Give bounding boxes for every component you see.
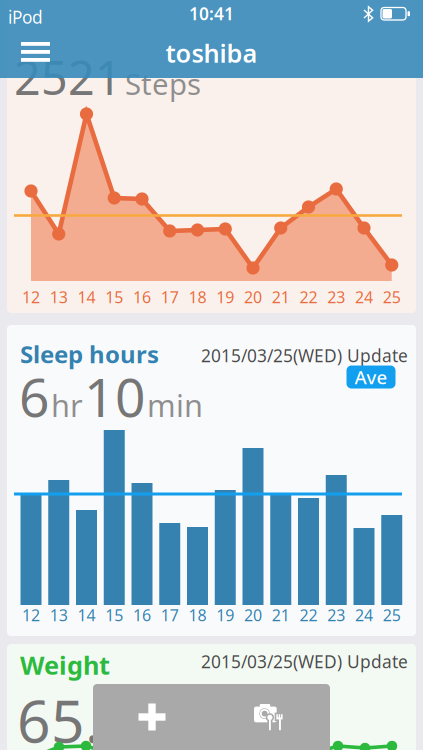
staticText: 10 [84, 361, 146, 432]
staticText: toshiba [165, 36, 257, 70]
staticText: 19 [216, 286, 234, 308]
staticText: 25 [383, 604, 401, 626]
staticText: 2015/03/25(WED) Update [201, 344, 408, 367]
staticText: Sleep hours [20, 338, 159, 370]
staticText: 10:41 [189, 2, 234, 25]
staticText: 20 [244, 286, 262, 308]
staticText: 12 [22, 286, 40, 308]
staticText: min [147, 385, 203, 425]
staticText: 25 [383, 286, 401, 308]
staticText: 22 [299, 286, 317, 308]
staticText: 17 [161, 286, 179, 308]
staticText: 6 [19, 361, 50, 432]
button[interactable]: Add meal photo [211, 684, 329, 750]
staticText: 13 [50, 604, 68, 626]
button[interactable]: Ave [346, 365, 395, 389]
staticText: 14 [77, 286, 95, 308]
staticText: 24 [355, 604, 373, 626]
staticText: 20 [244, 604, 262, 626]
staticText: 2015/03/25(WED) Update [201, 650, 408, 673]
staticText: 18 [188, 286, 206, 308]
staticText: Steps [125, 64, 201, 103]
staticText: 19 [216, 604, 234, 626]
staticText: 13 [50, 286, 68, 308]
button[interactable]: Menu [0, 0, 60, 70]
staticText: 15 [105, 286, 123, 308]
staticText: 2521 [14, 46, 122, 108]
staticText: 16 [133, 604, 151, 626]
staticText: 12 [22, 604, 40, 626]
staticText: 16 [133, 286, 151, 308]
staticText: Ave [354, 365, 387, 389]
button[interactable]: Add entry [93, 684, 211, 750]
staticText: 65.0 [17, 681, 135, 750]
staticText: 23 [327, 604, 345, 626]
staticText: 14 [77, 604, 95, 626]
staticText: 22 [299, 604, 317, 626]
staticText: 21 [272, 604, 290, 626]
staticText: iPod [8, 5, 43, 28]
staticText: Weight [20, 648, 110, 682]
staticText: 24 [355, 286, 373, 308]
staticText: 17 [161, 604, 179, 626]
staticText: hr [51, 385, 83, 425]
staticText: 23 [327, 286, 345, 308]
staticText: 15 [105, 604, 123, 626]
staticText: 18 [188, 604, 206, 626]
staticText: 21 [272, 286, 290, 308]
